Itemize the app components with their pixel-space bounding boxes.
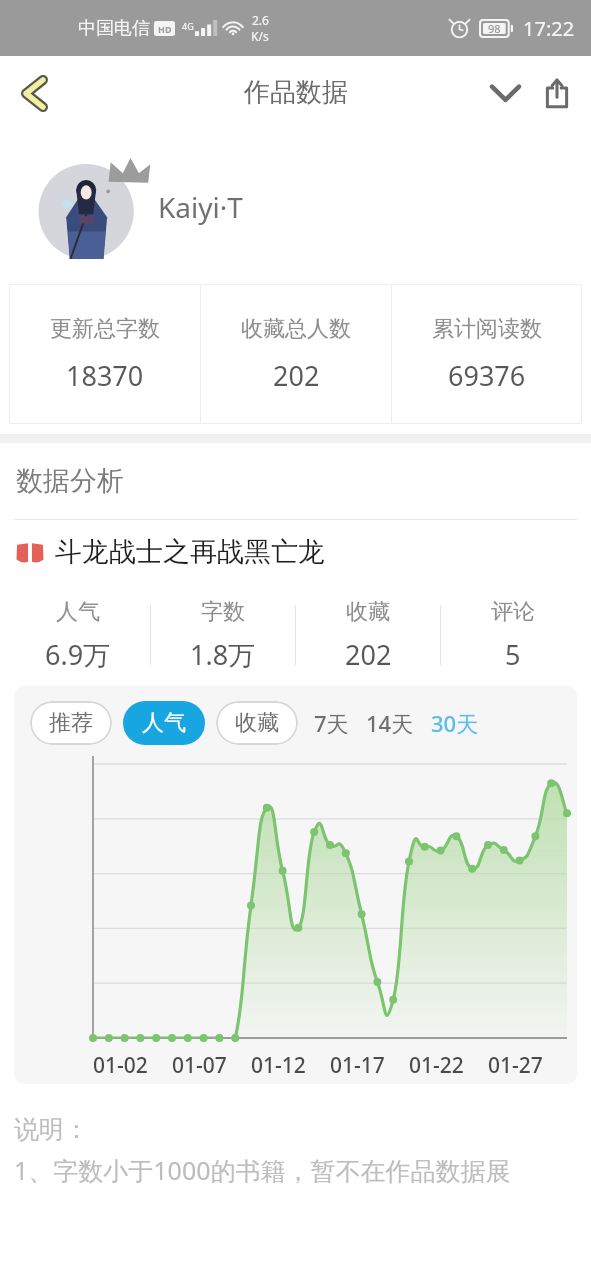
staticText: 数据分析	[16, 464, 124, 498]
staticText: 收藏	[346, 598, 390, 626]
staticText: 中国电信	[78, 17, 150, 40]
button[interactable]: 7天	[311, 700, 352, 746]
button[interactable]: 更新总字数	[9, 284, 200, 424]
staticText: 69376	[448, 357, 526, 394]
button[interactable]: 14天	[363, 700, 417, 746]
staticText: 98	[488, 21, 501, 36]
button[interactable]: 人气	[6, 584, 150, 686]
staticText: 1、字数小于1000的书籍，暂不在作品数据展	[14, 1153, 511, 1187]
staticText: 1.8万	[190, 636, 256, 673]
staticText: 作品数据	[244, 76, 348, 109]
button[interactable]: 30天	[428, 700, 482, 746]
staticText: 6.9万	[45, 636, 111, 673]
staticText: 5	[505, 636, 521, 673]
staticText: 01-22	[409, 1051, 464, 1080]
staticText: 人气	[142, 709, 186, 737]
staticText: 202	[345, 636, 392, 673]
staticText: 14天	[366, 708, 414, 738]
button[interactable]: Kaiyi·T	[0, 129, 591, 284]
staticText: 说明：	[14, 1114, 89, 1145]
staticText: 01-27	[488, 1051, 543, 1080]
button[interactable]: 人气	[123, 701, 205, 745]
staticText: 01-07	[172, 1051, 227, 1080]
button[interactable]: Back	[6, 65, 62, 121]
staticText: Kaiyi·T	[158, 188, 243, 226]
button[interactable]: 斗龙战士之再战黑亡龙	[0, 520, 591, 584]
staticText: 斗龙战士之再战黑亡龙	[55, 535, 325, 569]
staticText: 17:22	[523, 15, 575, 42]
staticText: 01-02	[93, 1051, 148, 1080]
staticText: 30天	[431, 708, 479, 738]
staticText: 收藏	[235, 709, 279, 737]
staticText: 01-17	[330, 1051, 385, 1080]
button[interactable]: 推荐	[30, 701, 112, 745]
staticText: 评论	[491, 598, 535, 626]
staticText: 推荐	[49, 709, 93, 737]
button[interactable]: 累计阅读数	[392, 284, 582, 424]
button[interactable]: 评论	[441, 584, 585, 686]
staticText: 202	[273, 357, 320, 394]
staticText: 01-12	[251, 1051, 306, 1080]
button[interactable]: 收藏	[296, 584, 440, 686]
button[interactable]: 收藏总人数	[201, 284, 391, 424]
button[interactable]: Share	[531, 67, 583, 119]
staticText: 更新总字数	[50, 315, 160, 343]
staticText: 4G	[182, 20, 194, 32]
staticText: HD	[158, 23, 172, 35]
staticText: 收藏总人数	[241, 315, 351, 343]
staticText: K/s	[251, 28, 269, 44]
staticText: 18370	[66, 357, 144, 394]
staticText: 人气	[56, 598, 100, 626]
button[interactable]: 字数	[151, 584, 295, 686]
staticText: 字数	[201, 598, 245, 626]
button[interactable]: Expand	[479, 67, 531, 119]
staticText: 累计阅读数	[432, 315, 542, 343]
staticText: 2.6	[252, 12, 269, 28]
staticText: 7天	[314, 708, 349, 738]
button[interactable]: 收藏	[216, 701, 298, 745]
